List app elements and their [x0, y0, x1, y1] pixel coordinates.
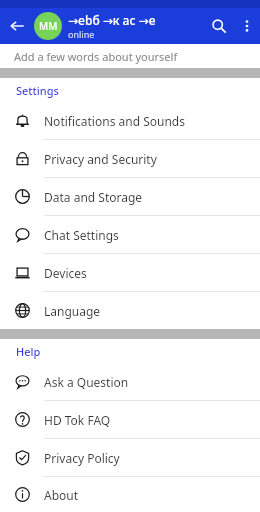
staticText: About [44, 487, 79, 503]
staticText: Help [16, 344, 41, 359]
staticText: Add a few words about yourself [14, 49, 178, 64]
button[interactable]: Language [0, 292, 260, 329]
staticText: →ebб →к aс →е [68, 12, 156, 28]
staticText: Notifications and Sounds [44, 113, 185, 129]
staticText: Chat Settings [44, 227, 119, 243]
button[interactable]: About [0, 477, 260, 512]
staticText: HD Tok FAQ [44, 412, 111, 428]
button[interactable]: HD Tok FAQ [0, 401, 260, 438]
staticText: Language [44, 303, 101, 319]
button[interactable]: Devices [0, 254, 260, 291]
button[interactable]: Privacy Policy [0, 439, 260, 476]
button[interactable]: →ebб →к aс →е [68, 12, 204, 40]
button[interactable]: More options [234, 8, 260, 44]
button[interactable]: Notifications and Sounds [0, 102, 260, 139]
staticText: Data and Storage [44, 189, 143, 205]
button[interactable]: MM [34, 12, 62, 40]
staticText: Privacy Policy [44, 450, 120, 466]
staticText: Devices [44, 265, 87, 281]
button[interactable]: Back [0, 8, 34, 44]
staticText: Ask a Question [44, 374, 129, 390]
button[interactable]: Data and Storage [0, 178, 260, 215]
staticText: MM [39, 19, 58, 33]
staticText: Privacy and Security [44, 151, 157, 167]
button[interactable]: Privacy and Security [0, 140, 260, 177]
button[interactable]: Search [204, 8, 234, 44]
staticText: Settings [16, 83, 59, 98]
button[interactable]: Ask a Question [0, 363, 260, 400]
button[interactable]: Chat Settings [0, 216, 260, 253]
staticText: online [68, 28, 95, 40]
button[interactable]: Add a few words about yourself [0, 44, 260, 68]
